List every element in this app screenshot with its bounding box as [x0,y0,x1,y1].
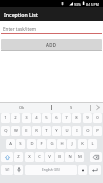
button[interactable]: N [65,152,74,162]
button[interactable]: P [93,126,102,136]
button[interactable]: Y [52,126,61,136]
button[interactable]: T [42,126,51,136]
button[interactable] [90,152,102,162]
staticText: !#1 [5,168,10,172]
button[interactable]: U [62,126,71,136]
button[interactable]: Q [1,126,10,136]
button[interactable]: !#1 [1,165,13,175]
staticText: P [96,128,99,134]
staticText: N [68,154,72,160]
button[interactable]: English (US) [25,165,77,175]
staticText: R [35,128,38,134]
button[interactable] [78,165,87,175]
button[interactable]: M [75,152,84,162]
button[interactable]: B [55,152,64,162]
button[interactable]: F [37,139,46,149]
button[interactable]: 7 [62,113,71,123]
button[interactable]: 2 [11,113,20,123]
staticText: G [50,141,54,147]
button[interactable]: I [72,126,81,136]
staticText: E [25,128,28,134]
button[interactable]: 3 [22,113,31,123]
staticText: S [19,141,22,147]
staticText: X [28,154,31,160]
staticText: Z [17,154,20,160]
button[interactable]: H [57,139,66,149]
button[interactable]: 0 [93,113,102,123]
button[interactable]: Z [14,152,23,162]
staticText: L [91,141,94,147]
staticText: ADD [46,42,57,48]
staticText: 1 [4,115,7,121]
staticText: I [76,128,78,134]
staticText: 8 [75,115,78,121]
staticText: T [45,128,48,134]
staticText: 93% [74,2,81,7]
staticText: 4 [35,115,38,121]
staticText: H [60,141,64,147]
button[interactable]: Enter task/item [1,23,102,34]
button[interactable] [0,103,36,113]
button[interactable]: V [45,152,54,162]
staticText: 9 [86,115,89,121]
staticText: 3 [25,115,28,121]
button[interactable]: ADD [1,39,102,50]
staticText: U [65,128,69,134]
button[interactable] [89,165,101,175]
button[interactable]: O [83,126,92,136]
button[interactable]: S [16,139,25,149]
staticText: Ok [19,105,25,110]
staticText: Y [55,128,58,134]
button[interactable]: 5 [42,113,51,123]
button[interactable]: G [47,139,56,149]
staticText: 8:15 PM [86,2,99,7]
button[interactable]: C [35,152,44,162]
button[interactable]: 1 [1,113,10,123]
button[interactable] [14,165,23,175]
button[interactable]: E [22,126,31,136]
button[interactable]: D [27,139,36,149]
button[interactable]: 4 [32,113,41,123]
staticText: Inception List [4,11,38,18]
staticText: English (US) [42,168,60,172]
staticText: 7 [65,115,68,121]
button[interactable]: 6 [52,113,61,123]
staticText: O [86,128,90,134]
staticText: F [40,141,43,147]
staticText: V [48,154,51,160]
staticText: 0 [96,115,99,121]
button[interactable]: A [6,139,15,149]
staticText: S [70,105,73,110]
button[interactable]: L [88,139,97,149]
button[interactable]: 9 [83,113,92,123]
staticText: J [71,141,73,147]
button[interactable]: X [25,152,34,162]
staticText: C [38,154,41,160]
staticText: 5 [45,115,48,121]
staticText: W [14,128,18,134]
button[interactable]: 8 [72,113,81,123]
staticText: A [9,141,12,147]
staticText: Enter task/item [3,26,37,32]
button[interactable]: W [11,126,20,136]
staticText: 2 [14,115,17,121]
staticText: D [30,141,34,147]
button[interactable] [1,152,13,162]
button[interactable]: J [67,139,76,149]
button[interactable] [96,105,100,110]
button[interactable]: K [78,139,87,149]
staticText: B [58,154,61,160]
staticText: M [78,154,82,160]
staticText: 6 [55,115,58,121]
staticText: K [81,141,84,147]
staticText: Q [4,128,8,134]
button[interactable]: R [32,126,41,136]
